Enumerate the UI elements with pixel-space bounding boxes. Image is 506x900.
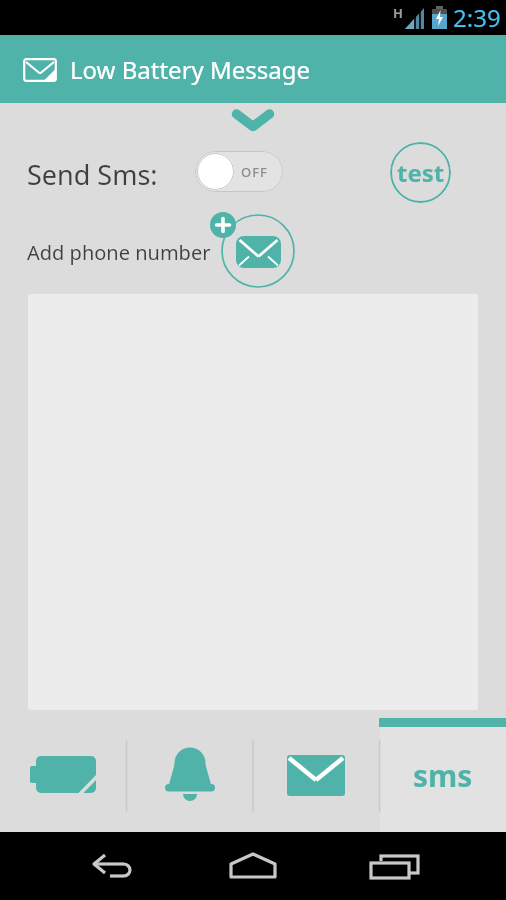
- staticText: 2:39: [453, 1, 501, 34]
- staticText: Add phone number: [27, 239, 211, 266]
- staticText: sms: [413, 755, 473, 796]
- button[interactable]: Low Battery Message: [0, 35, 506, 103]
- button[interactable]: sms: [379, 718, 506, 832]
- button[interactable]: [253, 718, 379, 832]
- button[interactable]: [0, 718, 126, 832]
- staticText: H: [393, 4, 403, 22]
- staticText: OFF: [241, 163, 268, 181]
- button[interactable]: [366, 846, 420, 886]
- staticText: Send Sms:: [27, 156, 158, 193]
- button[interactable]: [126, 718, 253, 832]
- button[interactable]: [86, 846, 138, 886]
- button[interactable]: OFF: [195, 151, 283, 192]
- staticText: test: [397, 156, 445, 189]
- button[interactable]: [206, 209, 298, 291]
- button[interactable]: [226, 846, 280, 886]
- staticText: Low Battery Message: [70, 53, 311, 86]
- button[interactable]: test: [390, 142, 451, 203]
